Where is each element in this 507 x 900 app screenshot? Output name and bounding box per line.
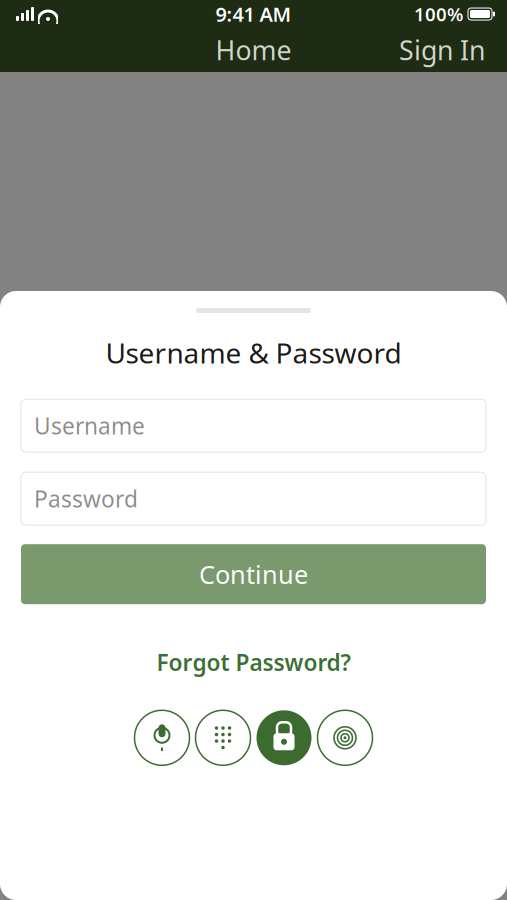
button[interactable]: Fingerprint sign in bbox=[317, 710, 372, 765]
button[interactable]: Sign In bbox=[389, 26, 495, 74]
staticText: 9:41 AM bbox=[215, 1, 291, 27]
button[interactable]: Forgot Password? bbox=[144, 639, 362, 685]
staticText: Sign In bbox=[399, 32, 485, 68]
button[interactable]: Keypad PIN bbox=[195, 710, 250, 765]
button[interactable]: Continue bbox=[21, 544, 486, 604]
staticText: Password bbox=[34, 484, 138, 514]
button[interactable]: Username and password bbox=[256, 710, 311, 765]
staticText: Username bbox=[34, 411, 145, 441]
staticText: Forgot Password? bbox=[156, 647, 350, 677]
button[interactable]: Home bbox=[205, 26, 301, 74]
button[interactable]: Username bbox=[21, 399, 486, 452]
button[interactable]: Voice sign in bbox=[134, 710, 189, 765]
staticText: Continue bbox=[199, 557, 308, 591]
staticText: 100% bbox=[414, 2, 463, 26]
staticText: Home bbox=[215, 32, 291, 68]
button[interactable]: Password bbox=[21, 472, 486, 525]
staticText: Username & Password bbox=[105, 334, 401, 371]
